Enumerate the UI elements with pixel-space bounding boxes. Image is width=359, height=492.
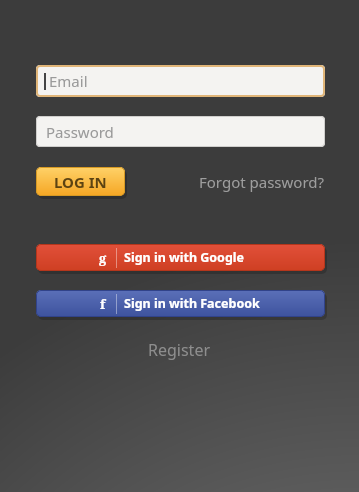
button[interactable]: g <box>36 244 325 271</box>
button[interactable]: LOG IN <box>36 167 125 196</box>
staticText: g <box>99 249 107 267</box>
staticText: f <box>100 295 106 313</box>
button[interactable]: Password <box>36 116 325 147</box>
staticText: Sign in with Facebook <box>124 295 260 312</box>
button[interactable]: Forgot password? <box>199 172 325 192</box>
button[interactable]: Register <box>0 339 359 361</box>
button[interactable]: f <box>36 290 325 317</box>
staticText: Register <box>148 339 211 361</box>
staticText: Forgot password? <box>199 172 325 192</box>
staticText: LOG IN <box>54 172 107 192</box>
staticText: Password <box>46 122 114 142</box>
staticText: Sign in with Google <box>124 249 245 266</box>
button[interactable]: Email <box>36 65 325 97</box>
staticText: Email <box>49 71 88 91</box>
